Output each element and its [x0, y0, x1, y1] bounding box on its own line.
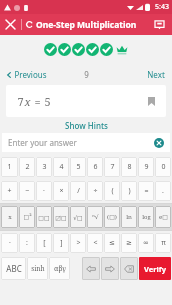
button[interactable]: .	[155, 181, 171, 201]
staticText: 9	[144, 162, 149, 172]
button[interactable]: −	[19, 181, 35, 201]
staticText: ≤	[109, 239, 115, 247]
button[interactable]: □̸□	[53, 206, 69, 228]
staticText: Verify	[144, 264, 166, 274]
staticText: 9	[84, 69, 89, 80]
button[interactable]: ⁿ√	[87, 206, 103, 228]
staticText: Next	[147, 69, 165, 80]
button[interactable]: ]	[53, 233, 69, 253]
button[interactable]: <	[87, 233, 103, 253]
staticText: ·	[9, 238, 11, 248]
staticText: αβγ	[54, 264, 66, 274]
button[interactable]: π	[155, 233, 171, 253]
button[interactable]: Bookmark	[144, 94, 159, 109]
staticText: 3	[42, 162, 47, 172]
button[interactable]: /	[70, 181, 86, 201]
button[interactable]: :	[19, 233, 35, 253]
button[interactable]: Next	[140, 66, 172, 83]
button[interactable]: ÷	[87, 181, 103, 201]
staticText: =	[144, 186, 149, 196]
button[interactable]: 7	[104, 157, 120, 177]
staticText: )	[128, 186, 131, 196]
button[interactable]: sinh	[27, 257, 48, 280]
staticText: ≥	[126, 239, 132, 247]
button[interactable]: αβγ	[49, 257, 70, 280]
button[interactable]: ×	[53, 181, 69, 201]
button[interactable]: Previous	[0, 66, 51, 83]
button[interactable]: Show Hints	[60, 118, 113, 133]
staticText: ∞	[143, 239, 149, 247]
button[interactable]: e□	[155, 206, 171, 228]
staticText: 5:43	[155, 2, 169, 12]
button[interactable]: ∞	[138, 233, 154, 253]
button[interactable]: )	[121, 181, 137, 201]
staticText: ÷	[93, 186, 98, 196]
staticText: log	[142, 213, 151, 221]
staticText: sinh	[31, 264, 45, 273]
button[interactable]: 3	[36, 157, 52, 177]
staticText: Show Hints	[65, 120, 108, 131]
button[interactable]: 6	[87, 157, 103, 177]
button[interactable]: □□	[36, 206, 52, 228]
staticText: One-Step Multiplication	[36, 19, 149, 31]
button[interactable]: ≤	[104, 233, 120, 253]
button[interactable]: ·	[1, 233, 18, 253]
button[interactable]: Enter your answer	[2, 133, 170, 152]
button[interactable]: 4	[53, 157, 69, 177]
staticText: <	[93, 238, 98, 248]
button[interactable]: Clear	[151, 135, 167, 151]
staticText: □²	[23, 213, 32, 221]
button[interactable]: >	[70, 233, 86, 253]
staticText: x	[24, 94, 31, 109]
staticText: e□	[159, 213, 168, 221]
button[interactable]: [	[36, 233, 52, 253]
button[interactable]: Move right	[101, 257, 119, 280]
staticText: x	[8, 213, 12, 221]
staticText: 7	[110, 162, 115, 172]
button[interactable]: Verify	[139, 257, 171, 280]
staticText: 4	[59, 162, 64, 172]
staticText: □□	[38, 214, 50, 221]
staticText: ABC	[6, 263, 22, 274]
button[interactable]: 7	[6, 85, 166, 117]
button[interactable]: ≥	[121, 233, 137, 253]
button[interactable]: √□	[70, 206, 86, 228]
button[interactable]: =	[138, 181, 154, 201]
button[interactable]: 1	[1, 157, 18, 177]
staticText: 2	[25, 162, 30, 172]
button[interactable]: 2	[19, 157, 35, 177]
button[interactable]: Calculator	[149, 14, 170, 35]
staticText: √□	[73, 214, 83, 221]
button[interactable]: (□)	[104, 206, 120, 228]
staticText: Previous	[14, 69, 47, 80]
staticText: 7	[17, 94, 24, 109]
button[interactable]: (	[104, 181, 120, 201]
staticText: :	[26, 238, 28, 248]
staticText: 0	[161, 162, 166, 172]
button[interactable]: □²	[19, 206, 35, 228]
button[interactable]: 5	[70, 157, 86, 177]
staticText: 6	[93, 162, 98, 172]
staticText: =	[34, 94, 41, 109]
staticText: [	[43, 238, 46, 248]
staticText: ×	[59, 186, 64, 196]
button[interactable]: Close	[0, 14, 21, 35]
button[interactable]: ln	[121, 206, 137, 228]
button[interactable]: log	[138, 206, 154, 228]
button[interactable]: ·	[36, 181, 52, 201]
staticText: 5	[44, 94, 51, 109]
button[interactable]: Move left	[82, 257, 100, 280]
staticText: ⁿ√	[92, 213, 99, 221]
staticText: −	[25, 186, 30, 196]
button[interactable]: Backspace	[120, 257, 138, 280]
staticText: 1	[7, 162, 12, 172]
button[interactable]: 0	[155, 157, 171, 177]
button[interactable]: +	[1, 181, 18, 201]
staticText: 8	[127, 162, 132, 172]
button[interactable]: 8	[121, 157, 137, 177]
button[interactable]: ABC	[1, 257, 26, 280]
button[interactable]: 9	[138, 157, 154, 177]
button[interactable]: x	[1, 206, 18, 228]
staticText: (	[111, 186, 114, 196]
staticText: □̸□	[55, 214, 67, 221]
